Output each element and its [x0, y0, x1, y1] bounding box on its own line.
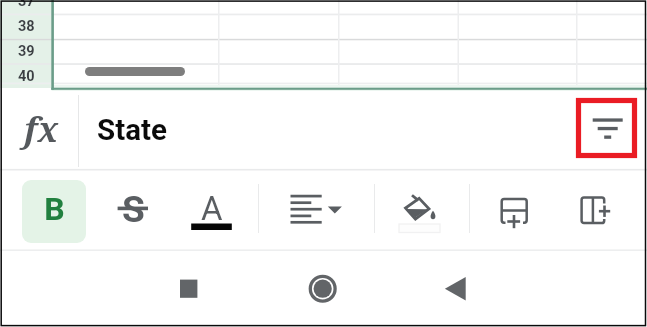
button[interactable]: B	[22, 180, 86, 243]
button[interactable]: Insert function	[0, 91, 78, 171]
staticText: State	[97, 113, 167, 148]
staticText: B	[44, 190, 65, 228]
staticText: 39	[18, 43, 35, 60]
button[interactable]: Text alignment	[282, 179, 344, 241]
button[interactable]: Strikethrough	[102, 177, 164, 239]
staticText: A	[201, 189, 223, 228]
button[interactable]: Insert column	[562, 179, 624, 241]
button[interactable]: Text colour	[181, 179, 243, 241]
button[interactable]: Format	[576, 98, 637, 158]
staticText: 37	[18, 0, 35, 10]
button[interactable]: Back	[424, 259, 486, 319]
staticText: 38	[18, 18, 35, 35]
button[interactable]: Insert row	[483, 179, 545, 241]
staticText: fx	[24, 106, 59, 152]
staticText: 40	[18, 68, 35, 85]
button[interactable]: Fill colour	[386, 179, 448, 241]
button[interactable]: Home	[292, 259, 354, 319]
button[interactable]: Recents	[157, 259, 219, 319]
staticText: S	[122, 188, 145, 231]
